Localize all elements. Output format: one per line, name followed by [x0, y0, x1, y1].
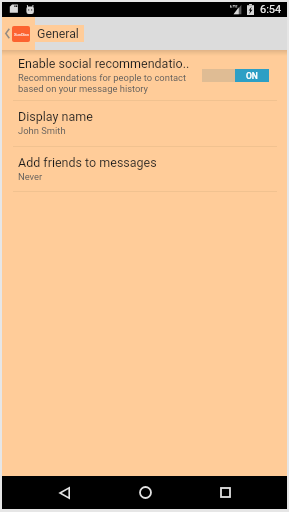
staticText: John Smith: [18, 125, 66, 136]
button[interactable]: Add friends to messages: [2, 147, 287, 191]
button[interactable]: Home: [121, 476, 169, 509]
staticText: Recommendations for people to contact ba…: [18, 72, 196, 94]
button[interactable]: Recent apps: [201, 476, 249, 509]
staticText: Display name: [18, 109, 93, 124]
staticText: General: [37, 27, 79, 41]
staticText: XunDian: [14, 32, 29, 37]
button[interactable]: Back: [40, 476, 88, 509]
staticText: 6:54: [260, 3, 282, 16]
button[interactable]: General: [35, 25, 84, 42]
button[interactable]: Enable social recommendatio..: [2, 50, 287, 100]
button[interactable]: Enable social recommendations, On: [202, 69, 269, 82]
staticText: Add friends to messages: [18, 155, 157, 170]
staticText: ON: [246, 71, 258, 81]
button[interactable]: Navigate up: [2, 17, 35, 50]
staticText: Never: [18, 171, 43, 182]
staticText: Enable social recommendatio..: [18, 56, 190, 71]
button[interactable]: Display name: [2, 101, 287, 146]
